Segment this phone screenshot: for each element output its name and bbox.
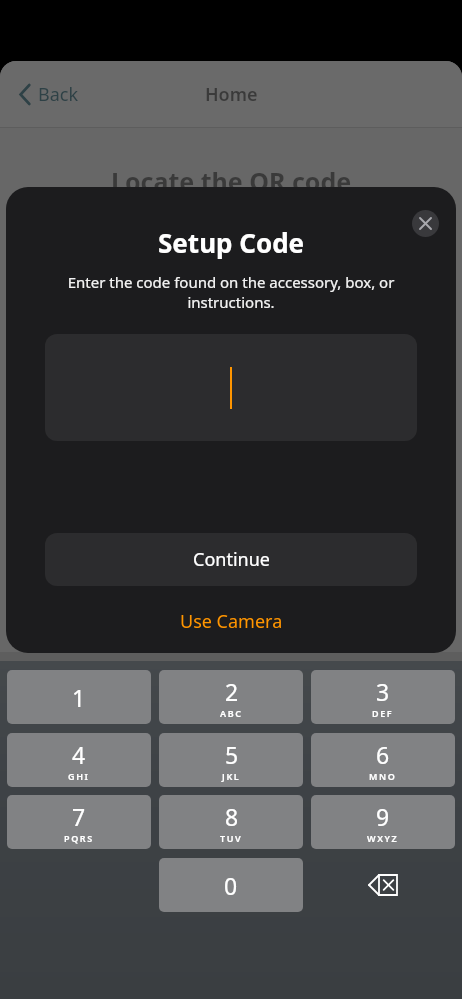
staticText: 9 <box>376 801 390 832</box>
staticText: 4 <box>72 739 86 770</box>
button[interactable]: Use Camera <box>162 603 301 640</box>
staticText: Use Camera <box>180 609 283 634</box>
staticText: JKL <box>222 770 241 782</box>
staticText: 6 <box>376 739 390 770</box>
staticText: DEF <box>372 707 394 719</box>
staticText: 7 <box>72 801 86 832</box>
staticText: Locate the QR code <box>111 164 352 198</box>
button[interactable]: 0 <box>159 858 303 912</box>
staticText: GHI <box>68 770 90 782</box>
staticText: PQRS <box>64 832 94 844</box>
button[interactable]: Continue <box>45 533 417 586</box>
button[interactable]: 2 <box>159 670 303 724</box>
button[interactable]: Backspace <box>311 858 455 912</box>
button[interactable]: 4 <box>7 733 151 787</box>
staticText: 2 <box>225 676 239 707</box>
button[interactable]: 6 <box>311 733 455 787</box>
staticText: 0 <box>224 870 238 901</box>
button[interactable]: 7 <box>7 795 151 849</box>
staticText: 3 <box>376 676 390 707</box>
staticText: MNO <box>369 770 397 782</box>
button[interactable]: 9 <box>311 795 455 849</box>
staticText: Home <box>205 82 258 107</box>
button[interactable]: 8 <box>159 795 303 849</box>
staticText: Setup Code <box>158 225 305 260</box>
staticText: ABC <box>220 707 243 719</box>
staticText: Enter the code found on the accessory, b… <box>46 272 416 312</box>
button[interactable]: 5 <box>159 733 303 787</box>
button[interactable] <box>45 334 417 441</box>
staticText: TUV <box>220 832 243 844</box>
staticText: WXYZ <box>367 832 399 844</box>
staticText: 8 <box>225 801 239 832</box>
staticText: 1 <box>72 682 86 713</box>
staticText: Back <box>38 82 79 107</box>
button[interactable]: Back <box>16 76 83 113</box>
button[interactable]: 3 <box>311 670 455 724</box>
button[interactable]: Close <box>412 210 439 237</box>
staticText: 5 <box>225 739 239 770</box>
button[interactable]: 1 <box>7 670 151 724</box>
staticText: Continue <box>193 547 270 572</box>
